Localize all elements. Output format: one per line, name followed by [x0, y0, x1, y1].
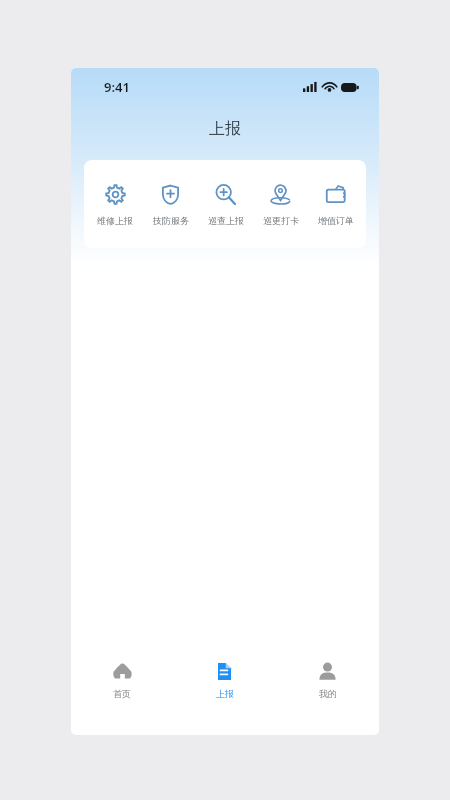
- staticText: 巡更打卡: [263, 215, 299, 226]
- button[interactable]: 首页: [71, 653, 173, 707]
- staticText: 维修上报: [97, 215, 133, 226]
- button[interactable]: 维修上报: [87, 160, 143, 248]
- staticText: 巡查上报: [208, 215, 244, 226]
- staticText: 上报: [209, 119, 241, 139]
- staticText: 9:41: [104, 78, 130, 96]
- staticText: 我的: [319, 688, 337, 699]
- button[interactable]: 巡更打卡: [253, 160, 308, 248]
- staticText: 增值订单: [318, 215, 354, 226]
- button[interactable]: 我的: [276, 653, 379, 707]
- button[interactable]: 技防服务: [143, 160, 198, 248]
- button[interactable]: 上报: [173, 653, 276, 707]
- button[interactable]: 巡查上报: [198, 160, 253, 248]
- button[interactable]: 增值订单: [308, 160, 363, 248]
- staticText: 技防服务: [153, 215, 189, 226]
- staticText: 首页: [113, 688, 131, 699]
- staticText: 上报: [216, 688, 234, 699]
